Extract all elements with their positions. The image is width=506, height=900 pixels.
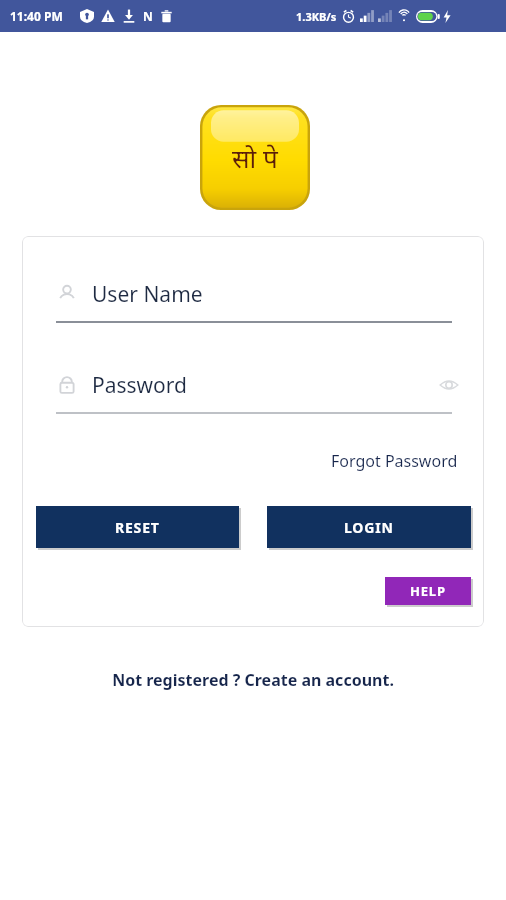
staticText: Forgot Password <box>331 450 458 472</box>
staticText: 11:40 PM <box>10 8 63 24</box>
button[interactable]: Show password <box>430 366 468 404</box>
staticText: User Name <box>92 280 203 309</box>
staticText: LOGIN <box>344 518 394 537</box>
staticText: RESET <box>115 518 160 537</box>
staticText: Password <box>92 371 187 400</box>
button[interactable]: LOGIN <box>267 506 471 548</box>
button[interactable]: Password <box>56 363 452 407</box>
button[interactable]: App logo <box>200 105 310 210</box>
staticText: N <box>143 8 153 24</box>
button[interactable]: Forgot Password <box>322 444 458 478</box>
button[interactable]: RESET <box>36 506 239 548</box>
staticText: HELP <box>410 582 446 600</box>
button[interactable]: User Name <box>56 272 452 316</box>
staticText: 1.3KB/s <box>296 9 337 24</box>
staticText: सो पे <box>232 140 278 175</box>
button[interactable]: HELP <box>385 577 471 605</box>
button[interactable]: Not registered ? Create an account. <box>0 662 506 698</box>
staticText: Not registered ? Create an account. <box>112 669 394 691</box>
